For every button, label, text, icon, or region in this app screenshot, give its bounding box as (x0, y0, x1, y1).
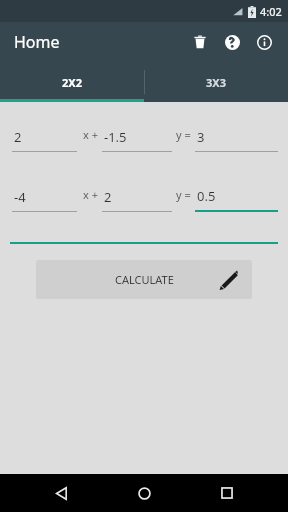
staticText: CALCULATE (115, 272, 174, 287)
button[interactable]: 3X3 (144, 62, 288, 102)
staticText: 4:02 (260, 4, 282, 19)
button[interactable]: 2 (102, 176, 172, 212)
staticText: -1.5 (104, 128, 127, 146)
staticText: y = (176, 127, 191, 142)
button[interactable]: 0.5 (195, 176, 278, 212)
staticText: Home (14, 31, 60, 53)
button[interactable]: Home (122, 474, 166, 512)
button[interactable]: 3 (195, 116, 278, 152)
button[interactable]: -1.5 (102, 116, 172, 152)
button[interactable]: 2X2 (0, 62, 144, 102)
button[interactable]: -4 (12, 176, 77, 212)
button[interactable]: Delete (184, 26, 216, 58)
staticText: 2 (14, 128, 22, 146)
staticText: 3X3 (206, 75, 226, 90)
button[interactable]: CALCULATE (36, 260, 252, 299)
staticText: 2 (104, 188, 112, 206)
button[interactable]: Back (39, 474, 83, 512)
staticText: y = (176, 187, 191, 202)
staticText: 3 (197, 128, 205, 146)
staticText: x + (83, 127, 98, 142)
staticText: 2X2 (62, 75, 82, 90)
staticText: x + (83, 187, 98, 202)
staticText: 0.5 (197, 187, 216, 205)
button[interactable]: 2 (12, 116, 77, 152)
button[interactable]: Help (216, 26, 248, 58)
button[interactable]: Info (248, 26, 280, 58)
button[interactable]: Recent apps (205, 474, 249, 512)
staticText: -4 (14, 188, 26, 206)
